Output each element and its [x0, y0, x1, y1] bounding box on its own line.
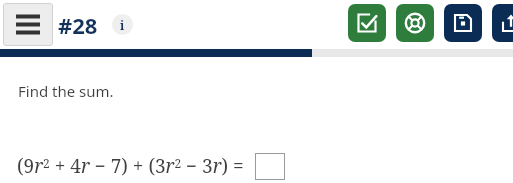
staticText: i [120, 17, 125, 33]
button[interactable]: Menu [3, 3, 53, 46]
button[interactable]: Check answer [348, 4, 386, 42]
button[interactable]: Information [112, 14, 133, 35]
button[interactable]: Get help [396, 4, 434, 42]
staticText: Find the sum. [18, 81, 114, 101]
staticText: (9r2 + 4r − 7) + (3r2 − 3r) = [17, 153, 244, 179]
button[interactable]: Share [492, 4, 513, 42]
button[interactable]: Save [444, 4, 482, 42]
staticText: #28 [58, 10, 98, 40]
button[interactable]: Answer input [255, 153, 285, 180]
